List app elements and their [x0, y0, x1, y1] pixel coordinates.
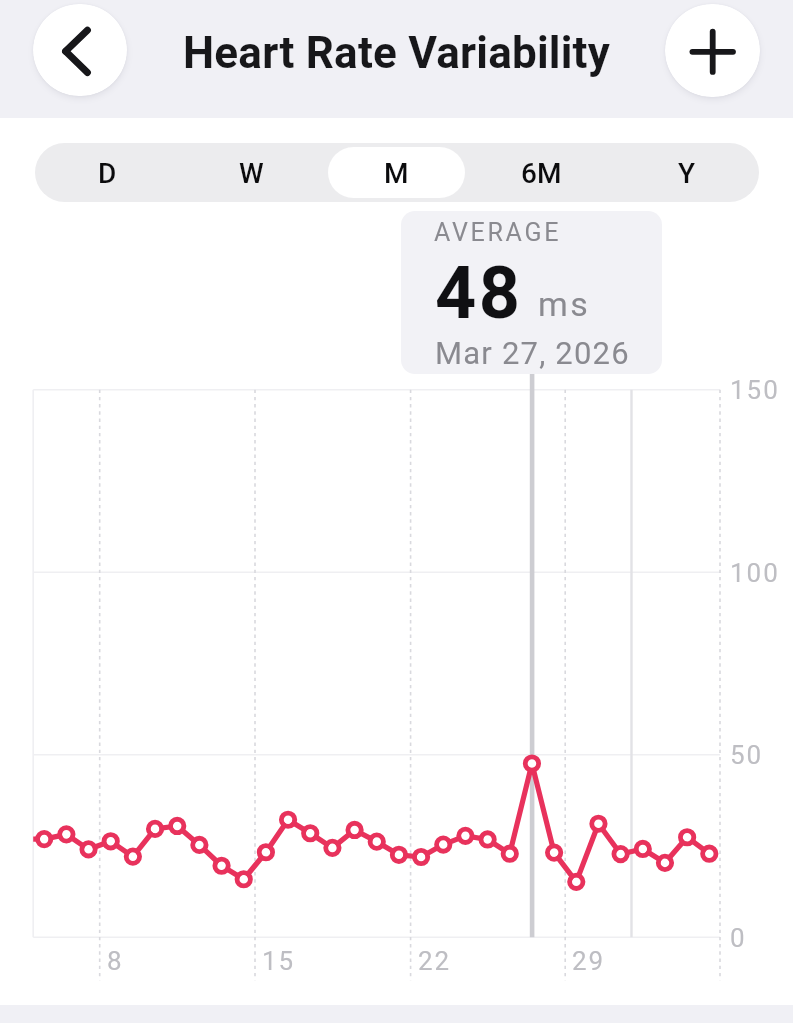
button[interactable]: W [183, 147, 320, 198]
staticText: 48 [435, 251, 523, 335]
button[interactable]: M [328, 147, 465, 198]
staticText: 6M [521, 157, 562, 190]
staticText: 150 [730, 375, 780, 405]
button[interactable]: Y [618, 147, 755, 198]
staticText: AVERAGE [434, 218, 562, 247]
staticText: Y [678, 157, 696, 190]
staticText: D [98, 157, 117, 190]
staticText: 8 [107, 946, 124, 976]
button[interactable]: 6M [473, 147, 610, 198]
button[interactable]: Add [665, 4, 760, 97]
staticText: 100 [730, 558, 780, 588]
staticText: ms [538, 284, 591, 324]
staticText: M [384, 157, 409, 190]
button[interactable]: D [39, 147, 175, 198]
staticText: W [239, 157, 264, 190]
staticText: 15 [262, 946, 296, 976]
staticText: 22 [418, 946, 452, 976]
staticText: 0 [730, 923, 747, 953]
staticText: Heart Rate Variability [183, 27, 611, 79]
staticText: 50 [730, 740, 764, 770]
staticText: 29 [572, 946, 606, 976]
staticText: Mar 27, 2026 [435, 335, 630, 371]
button[interactable]: Back [33, 4, 127, 96]
